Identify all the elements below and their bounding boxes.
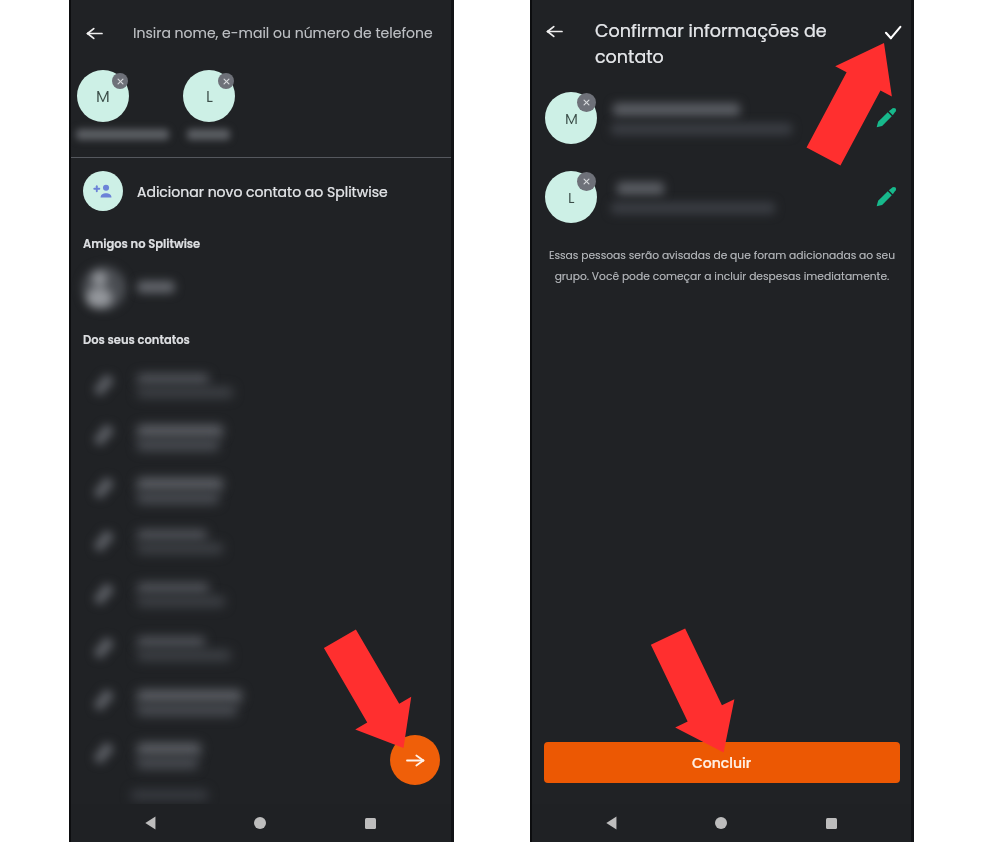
button[interactable]: L xyxy=(183,70,243,130)
button[interactable]: Avançar xyxy=(390,735,440,785)
button[interactable]: Voltar xyxy=(71,10,117,56)
button[interactable] xyxy=(69,363,454,416)
staticText: Confirmar informações de xyxy=(595,19,827,44)
button[interactable]: Recentes xyxy=(342,804,398,842)
button[interactable]: Voltar xyxy=(122,804,178,842)
button[interactable]: M xyxy=(77,70,137,130)
staticText: contato xyxy=(595,45,664,70)
button[interactable]: Início xyxy=(693,804,749,842)
button[interactable] xyxy=(69,466,454,519)
button[interactable]: Voltar xyxy=(531,8,577,54)
staticText: L xyxy=(206,85,213,107)
staticText: Adicionar novo contato ao Splitwise xyxy=(137,182,388,202)
button[interactable]: Confirmar xyxy=(871,10,915,54)
staticText: Concluir xyxy=(692,753,752,773)
button[interactable] xyxy=(69,626,454,679)
button[interactable]: Voltar xyxy=(583,804,639,842)
button[interactable] xyxy=(69,258,454,310)
button[interactable]: M xyxy=(530,80,914,158)
button[interactable] xyxy=(69,519,454,572)
staticText: M xyxy=(96,85,110,107)
staticText: Insira nome, e-mail ou número de telefon… xyxy=(133,23,433,43)
button[interactable] xyxy=(69,413,454,466)
staticText: L xyxy=(568,187,575,208)
staticText: Amigos no Splitwise xyxy=(83,236,201,252)
button[interactable]: Recentes xyxy=(803,804,859,842)
button[interactable]: Editar xyxy=(868,180,902,214)
button[interactable] xyxy=(69,731,454,784)
button[interactable]: Concluir xyxy=(544,742,900,783)
button[interactable] xyxy=(69,678,454,731)
button[interactable] xyxy=(69,572,454,625)
staticText: Dos seus contatos xyxy=(83,332,190,348)
button[interactable]: L xyxy=(530,159,914,237)
button[interactable]: Adicionar novo contato ao Splitwise xyxy=(69,159,454,223)
staticText: M xyxy=(565,108,578,129)
staticText: Essas pessoas serão avisadas de que fora… xyxy=(546,248,898,283)
button[interactable]: Editar xyxy=(868,101,902,135)
button[interactable]: Início xyxy=(232,804,288,842)
